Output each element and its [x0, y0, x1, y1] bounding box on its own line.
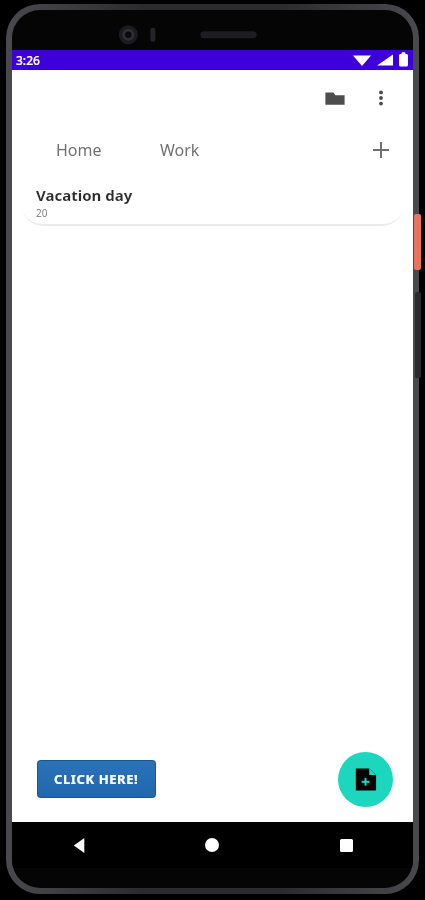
staticText: 3:26 — [16, 52, 40, 68]
staticText: Work — [160, 139, 200, 161]
staticText: Vacation day — [36, 185, 133, 205]
button[interactable]: Add tab — [361, 130, 401, 170]
staticText: Home — [56, 139, 102, 161]
button[interactable]: Add document — [338, 752, 393, 807]
button[interactable]: Vacation day — [20, 180, 405, 224]
button[interactable]: Home — [188, 822, 236, 868]
button[interactable]: Recent apps — [322, 822, 370, 868]
button[interactable]: CLICK HERE! — [38, 761, 155, 797]
button[interactable]: Home — [42, 131, 116, 169]
button[interactable]: Back — [55, 822, 103, 868]
button[interactable]: Folders — [313, 76, 357, 120]
button[interactable]: Work — [146, 131, 214, 169]
staticText: CLICK HERE! — [54, 770, 139, 788]
button[interactable]: More options — [359, 76, 403, 120]
staticText: 20 — [36, 206, 48, 220]
